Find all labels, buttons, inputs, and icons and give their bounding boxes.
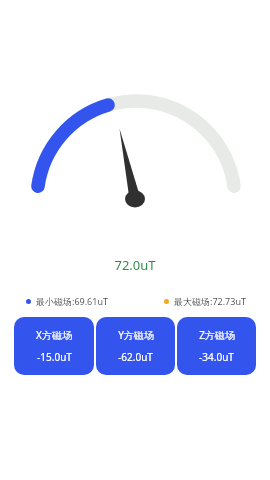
staticText: X方磁场: [36, 328, 72, 342]
staticText: Z方磁场: [199, 328, 235, 342]
staticText: 最大磁场:72.73uT: [174, 295, 246, 307]
other: indicator: [26, 299, 31, 304]
staticText: -62.0uT: [118, 350, 153, 364]
staticText: 最小磁场:69.61uT: [36, 295, 108, 307]
other: indicator: [164, 299, 169, 304]
button[interactable]: indicator: [164, 295, 246, 307]
staticText: -15.0uT: [37, 350, 72, 364]
button[interactable]: indicator: [26, 295, 108, 307]
staticText: -34.0uT: [199, 350, 234, 364]
button[interactable]: Y方磁场: [96, 317, 175, 375]
staticText: Y方磁场: [118, 328, 154, 342]
staticText: 72.0uT: [0, 256, 270, 274]
button[interactable]: Z方磁场: [177, 317, 256, 375]
button[interactable]: X方磁场: [14, 317, 94, 375]
